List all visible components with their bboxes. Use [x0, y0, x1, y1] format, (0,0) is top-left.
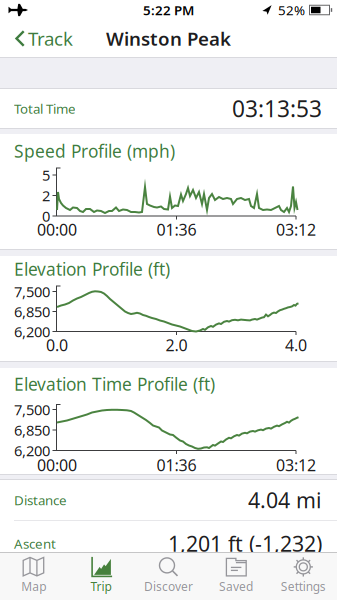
staticText: Ascent [14, 535, 56, 552]
staticText: Map [21, 578, 46, 594]
staticText: 00:00 [37, 219, 77, 240]
staticText: 7,500 [14, 282, 50, 301]
staticText: 2 [42, 186, 50, 205]
staticText: Distance [14, 491, 67, 509]
staticText: Elevation Profile (ft) [14, 257, 170, 280]
staticText: Discover [144, 578, 193, 594]
staticText: 4.0 [285, 334, 307, 356]
staticText: Trip [91, 578, 112, 594]
staticText: 00:00 [37, 454, 77, 476]
staticText: 7,500 [14, 400, 50, 419]
staticText: Settings [281, 578, 326, 594]
staticText: 6,850 [14, 302, 50, 321]
staticText: 2.0 [165, 334, 187, 356]
button[interactable]: Map [0, 552, 67, 600]
staticText: Track [28, 26, 73, 51]
staticText: 03:13:53 [232, 93, 322, 123]
staticText: 4.04 mi [248, 486, 322, 514]
staticText: 0 [42, 206, 50, 226]
staticText: 6,850 [14, 420, 50, 440]
staticText: Speed Profile (mph) [14, 139, 175, 162]
staticText: 6,200 [14, 441, 50, 460]
staticText: 5 [42, 165, 50, 185]
button[interactable]: Trip [67, 552, 135, 600]
staticText: 1,201 ft (-1,232) [168, 529, 322, 558]
button[interactable]: Settings [270, 552, 337, 600]
staticText: 6,200 [14, 322, 50, 341]
staticText: 01:36 [156, 454, 196, 476]
button[interactable]: Saved [202, 552, 270, 600]
staticText: Elevation Time Profile (ft) [14, 372, 215, 395]
button[interactable]: Back to Track [0, 26, 73, 51]
staticText: 03:12 [276, 454, 316, 476]
button[interactable]: Discover [135, 552, 202, 600]
staticText: Winston Peak [106, 26, 231, 51]
staticText: 03:12 [276, 219, 316, 240]
staticText: 5:22 PM [143, 1, 194, 19]
staticText: 01:36 [156, 219, 196, 240]
staticText: 0.0 [46, 334, 68, 356]
staticText: Total Time [14, 100, 76, 117]
staticText: 52% [278, 1, 305, 19]
staticText: Saved [219, 578, 253, 594]
